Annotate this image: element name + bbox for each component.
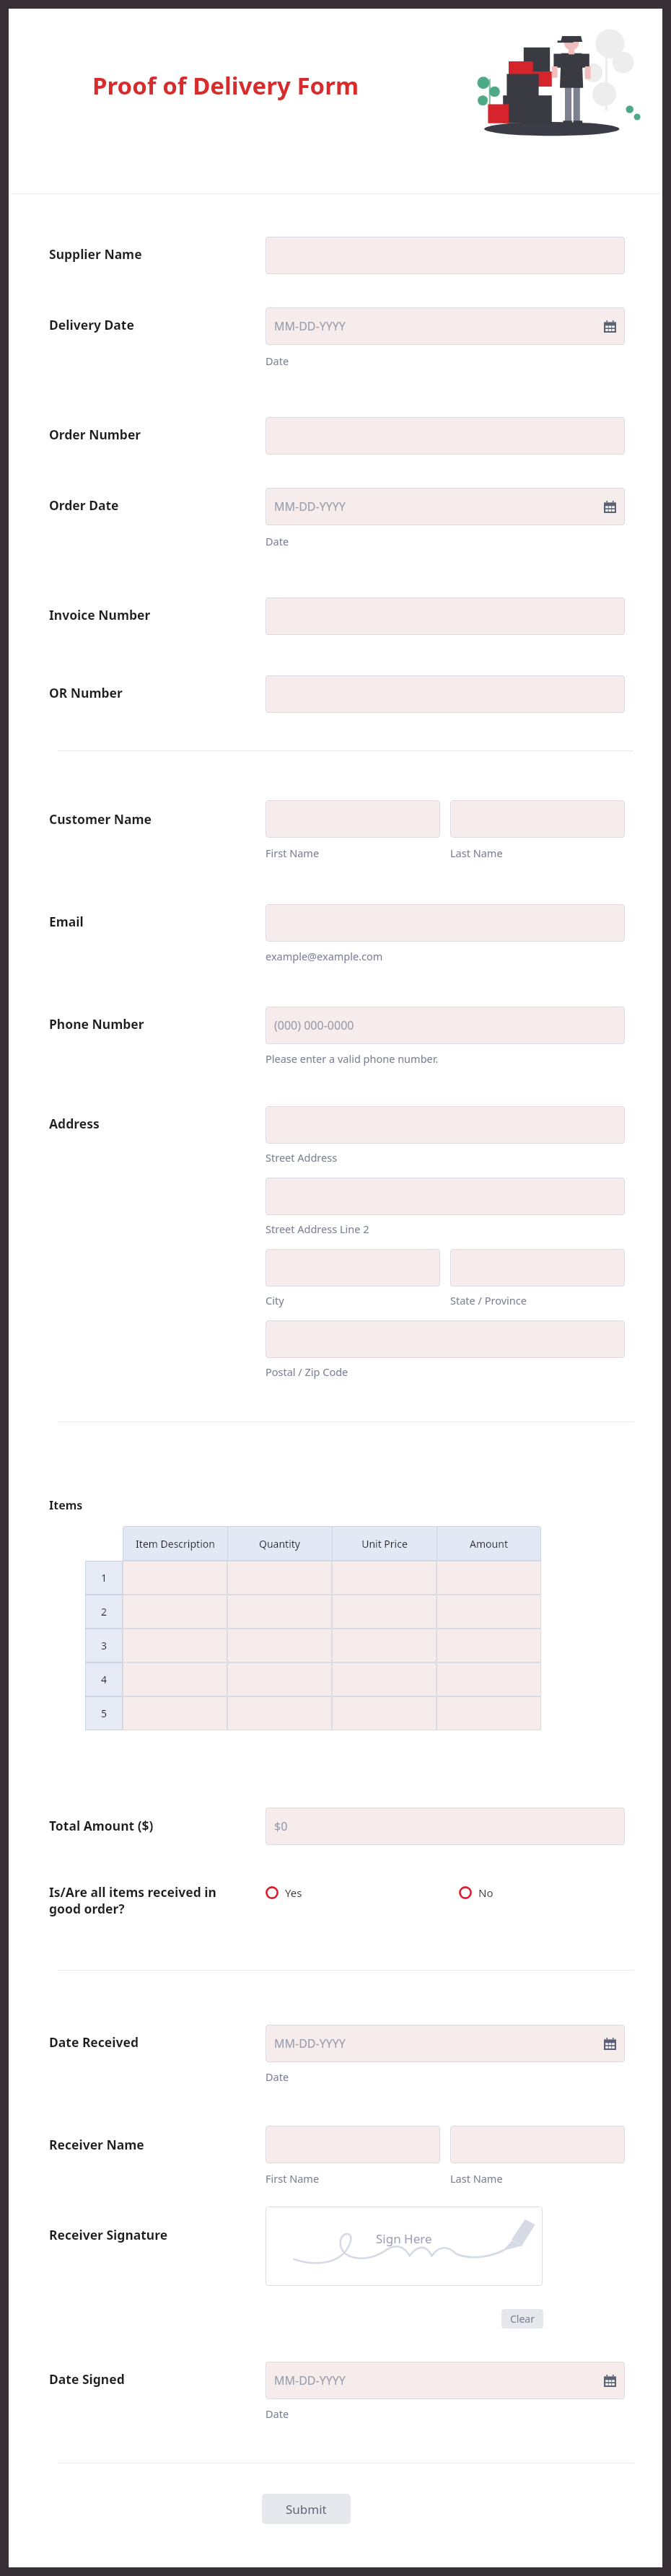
staticText: Receiver Name (49, 2136, 144, 2153)
staticText: Customer Name (49, 810, 152, 828)
button[interactable]: Delivery Date (266, 307, 625, 345)
staticText: example@example.com (266, 949, 383, 963)
button[interactable]: Street Address (266, 1106, 625, 1144)
button[interactable]: Date Received (266, 2025, 625, 2062)
button[interactable]: Sign here (266, 2207, 543, 2286)
staticText: Date (266, 354, 289, 368)
button[interactable]: Row 3 cell 4 (437, 1629, 541, 1662)
button[interactable]: Row 5 cell 3 (332, 1696, 437, 1730)
button[interactable]: Order Date (266, 488, 625, 525)
staticText: MM-DD-YYYY (274, 2036, 346, 2051)
button[interactable]: Row 2 cell 3 (332, 1595, 437, 1629)
staticText: 1 (101, 1571, 108, 1585)
staticText: MM-DD-YYYY (274, 499, 346, 514)
button[interactable]: Row 4 cell 2 (227, 1662, 332, 1696)
staticText: Unit Price (361, 1537, 408, 1551)
staticText: Date Signed (49, 2370, 125, 2388)
staticText: Clear (510, 2312, 535, 2326)
button[interactable]: Row 4 cell 4 (437, 1662, 541, 1696)
staticText: Yes (285, 1885, 302, 1900)
button[interactable]: Row 5 cell 2 (227, 1696, 332, 1730)
staticText: First Name (266, 846, 320, 860)
button[interactable]: Row 2 cell 2 (227, 1595, 332, 1629)
button[interactable]: Row 1 cell 4 (437, 1561, 541, 1595)
button[interactable]: Receiver Last Name (450, 2126, 625, 2163)
staticText: Date (266, 2406, 289, 2421)
staticText: Sign Here (376, 2230, 432, 2247)
staticText: First Name (266, 2171, 320, 2186)
staticText: OR Number (49, 684, 123, 701)
staticText: Invoice Number (49, 606, 151, 623)
button[interactable]: Row 3 cell 1 (123, 1629, 227, 1662)
staticText: Street Address Line 2 (266, 1222, 369, 1236)
staticText: Total Amount ($) (49, 1817, 154, 1834)
button[interactable]: Row 4 cell 1 (123, 1662, 227, 1696)
staticText: Order Number (49, 426, 141, 443)
staticText: Item Description (136, 1537, 215, 1551)
button[interactable]: First Name (266, 800, 440, 838)
button[interactable]: Postal / Zip Code (266, 1320, 625, 1358)
staticText: (000) 000-0000 (274, 1017, 354, 1033)
staticText: Submit (286, 2501, 327, 2518)
staticText: Date (266, 534, 289, 548)
staticText: Is/Are all items received in good order? (49, 1883, 216, 1917)
staticText: Proof of Delivery Form (92, 69, 359, 102)
button[interactable]: Invoice Number (266, 597, 625, 635)
button[interactable]: Last Name (450, 800, 625, 838)
staticText: 5 (101, 1707, 108, 1720)
staticText: Receiver Signature (49, 2226, 168, 2243)
staticText: Date (266, 2069, 289, 2084)
staticText: Last Name (450, 2171, 503, 2186)
staticText: Amount (470, 1537, 508, 1551)
staticText: Postal / Zip Code (266, 1364, 348, 1379)
button[interactable]: Receiver First Name (266, 2126, 440, 2163)
staticText: Order Date (49, 496, 119, 514)
button[interactable]: Row 5 cell 1 (123, 1696, 227, 1730)
button[interactable]: Row 4 cell 3 (332, 1662, 437, 1696)
staticText: $0 (274, 1818, 288, 1834)
button[interactable]: Row 2 cell 4 (437, 1595, 541, 1629)
button[interactable]: Date Signed (266, 2362, 625, 2399)
staticText: 2 (101, 1605, 108, 1618)
staticText: State / Province (450, 1293, 527, 1307)
button[interactable]: City (266, 1249, 440, 1287)
staticText: City (266, 1293, 284, 1307)
staticText: Phone Number (49, 1015, 144, 1033)
staticText: Last Name (450, 846, 503, 860)
staticText: Address (49, 1115, 100, 1132)
button[interactable]: Phone Number (266, 1007, 625, 1044)
button[interactable]: Row 1 cell 3 (332, 1561, 437, 1595)
button[interactable]: Row 1 cell 2 (227, 1561, 332, 1595)
staticText: MM-DD-YYYY (274, 318, 346, 334)
button[interactable]: OR Number (266, 675, 625, 713)
button[interactable]: Submit (262, 2494, 351, 2524)
staticText: Email (49, 913, 84, 930)
button[interactable]: Street Address Line 2 (266, 1178, 625, 1215)
button[interactable]: Row 2 cell 1 (123, 1595, 227, 1629)
button[interactable]: Total Amount (266, 1808, 625, 1845)
button[interactable]: Yes (266, 1882, 302, 1903)
staticText: Items (49, 1497, 83, 1513)
staticText: Supplier Name (49, 245, 142, 263)
staticText: Delivery Date (49, 316, 134, 333)
staticText: Quantity (259, 1537, 300, 1551)
button[interactable]: Order Number (266, 417, 625, 455)
staticText: Date Received (49, 2033, 139, 2051)
staticText: Street Address (266, 1150, 338, 1165)
button[interactable]: Row 5 cell 4 (437, 1696, 541, 1730)
button[interactable]: Row 1 cell 1 (123, 1561, 227, 1595)
staticText: No (478, 1885, 494, 1900)
button[interactable]: No (459, 1882, 494, 1903)
staticText: MM-DD-YYYY (274, 2373, 346, 2388)
staticText: Please enter a valid phone number. (266, 1051, 439, 1066)
button[interactable]: Clear (501, 2309, 543, 2329)
staticText: 4 (101, 1673, 108, 1686)
button[interactable]: Supplier Name (266, 237, 625, 274)
button[interactable]: Email (266, 904, 625, 942)
staticText: 3 (101, 1639, 108, 1652)
button[interactable]: Row 3 cell 3 (332, 1629, 437, 1662)
button[interactable]: State / Province (450, 1249, 625, 1287)
button[interactable]: Row 3 cell 2 (227, 1629, 332, 1662)
